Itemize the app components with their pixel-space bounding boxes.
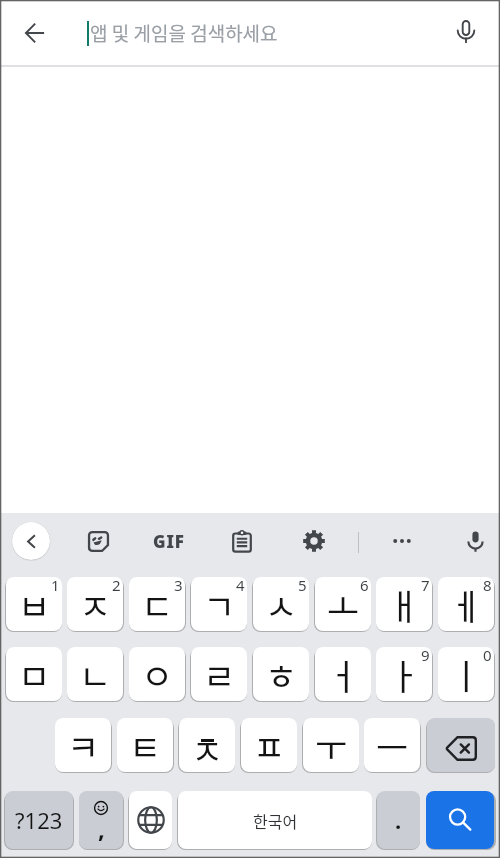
- staticText: 6: [360, 577, 369, 595]
- staticText: 3: [174, 577, 183, 595]
- staticText: 2: [112, 577, 121, 595]
- button[interactable]: ㅔ: [438, 577, 494, 631]
- button[interactable]: ㄹ: [191, 647, 247, 701]
- button[interactable]: ㅁ: [6, 647, 62, 701]
- staticText: ㅋ: [67, 720, 100, 771]
- staticText: ㅅ: [265, 579, 298, 630]
- button[interactable]: .: [377, 791, 420, 849]
- button[interactable]: Settings: [295, 522, 333, 560]
- staticText: GIF: [153, 530, 185, 553]
- button[interactable]: ㅈ: [67, 577, 123, 631]
- button[interactable]: ㄷ: [129, 577, 185, 631]
- staticText: 0: [483, 647, 492, 665]
- staticText: ㄷ: [141, 579, 174, 630]
- staticText: ?123: [15, 805, 63, 835]
- button[interactable]: Clipboard: [223, 522, 261, 560]
- button[interactable]: ㅂ: [6, 577, 62, 631]
- staticText: .: [395, 805, 402, 835]
- staticText: 5: [298, 577, 307, 595]
- staticText: ㄴ: [79, 649, 112, 700]
- button[interactable]: ㅐ: [376, 577, 432, 631]
- staticText: ㅏ: [388, 649, 421, 700]
- staticText: ㄹ: [203, 649, 236, 700]
- button[interactable]: ㅎ: [253, 647, 309, 701]
- button[interactable]: 한국어: [178, 791, 372, 849]
- staticText: ㅓ: [327, 649, 360, 700]
- button[interactable]: Change language: [129, 791, 172, 849]
- staticText: ,: [98, 812, 105, 845]
- staticText: ㅍ: [253, 720, 286, 771]
- button[interactable]: ㅜ: [303, 718, 359, 772]
- button[interactable]: Hide toolbar: [12, 522, 50, 560]
- staticText: 한국어: [253, 809, 298, 832]
- button[interactable]: Voice input: [456, 522, 494, 560]
- staticText: ㅈ: [191, 724, 224, 772]
- button[interactable]: ?123: [5, 791, 73, 849]
- staticText: 4: [236, 577, 245, 595]
- button[interactable]: ㅋ: [55, 718, 111, 772]
- staticText: ㅣ: [450, 649, 483, 700]
- staticText: ㅈ: [79, 579, 112, 630]
- button[interactable]: ㄴ: [67, 647, 123, 701]
- button[interactable]: ㅡ: [364, 718, 420, 772]
- staticText: ㅁ: [18, 649, 51, 700]
- staticText: ㅎ: [265, 649, 298, 700]
- staticText: ㅜ: [315, 720, 348, 771]
- staticText: ㅂ: [18, 579, 51, 630]
- button[interactable]: ㅅ: [253, 577, 309, 631]
- staticText: 8: [483, 577, 492, 595]
- staticText: ㅇ: [141, 649, 174, 700]
- button[interactable]: ㅌ: [117, 718, 173, 772]
- button[interactable]: Emoji: [79, 791, 123, 849]
- button[interactable]: ㅏ: [376, 647, 432, 701]
- button[interactable]: Back: [11, 9, 59, 57]
- button[interactable]: Voice search: [442, 9, 490, 57]
- staticText: ㅔ: [450, 579, 483, 630]
- staticText: ㅌ: [129, 720, 162, 771]
- button[interactable]: ㅍ: [241, 718, 297, 772]
- button[interactable]: GIF: [150, 522, 188, 560]
- staticText: 9: [421, 647, 430, 665]
- button[interactable]: More options: [383, 522, 421, 560]
- button[interactable]: Stickers: [79, 522, 117, 560]
- button[interactable]: ㅓ: [315, 647, 371, 701]
- button[interactable]: ㅈ: [179, 718, 235, 772]
- staticText: 앱 및 게임을 검색하세요: [90, 19, 278, 47]
- staticText: 7: [421, 577, 430, 595]
- staticText: 1: [51, 577, 60, 595]
- staticText: ㄱ: [203, 579, 236, 630]
- staticText: ㅡ: [376, 720, 409, 771]
- button[interactable]: ㅣ: [438, 647, 494, 701]
- button[interactable]: ㅇ: [129, 647, 185, 701]
- button[interactable]: ㅗ: [315, 577, 371, 631]
- button[interactable]: Search: [426, 791, 494, 849]
- staticText: ㅗ: [327, 579, 360, 630]
- button[interactable]: Backspace: [427, 718, 495, 772]
- staticText: ㅐ: [388, 579, 421, 630]
- button[interactable]: ㄱ: [191, 577, 247, 631]
